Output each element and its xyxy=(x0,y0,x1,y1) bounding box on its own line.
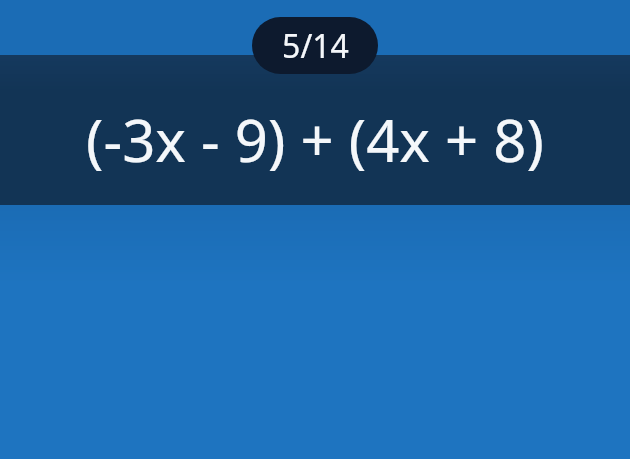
staticText: (-3x - 9) + (4x + 8) xyxy=(86,100,544,179)
staticText: 5/14 xyxy=(282,24,349,68)
button[interactable]: 5/14 xyxy=(252,17,378,74)
